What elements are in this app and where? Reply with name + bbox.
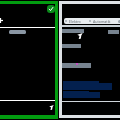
other: Add (0, 18, 3, 23)
button[interactable]: More (118, 20, 120, 23)
staticText: Automatik (93, 19, 111, 24)
button[interactable]: Automatik (89, 18, 111, 24)
button[interactable]: Confirm (47, 5, 55, 13)
button[interactable]: Elektro (65, 18, 81, 24)
staticText: Elektro (69, 19, 81, 24)
